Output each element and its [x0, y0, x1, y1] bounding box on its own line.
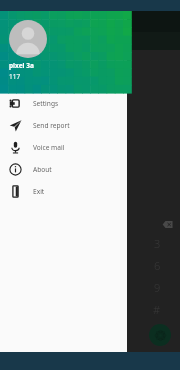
staticText: 6: [154, 258, 161, 273]
button[interactable]: Send report: [0, 114, 127, 136]
button[interactable]: Call: [149, 324, 171, 346]
staticText: 3: [154, 236, 161, 251]
staticText: Send report: [33, 121, 70, 130]
staticText: About: [33, 165, 52, 174]
button[interactable]: Exit: [0, 180, 127, 202]
button[interactable]: pixel 3a: [0, 11, 127, 89]
button[interactable]: Messages: [107, 33, 123, 49]
staticText: Settings: [33, 99, 59, 108]
staticText: 117: [9, 72, 21, 81]
button[interactable]: Settings: [0, 92, 127, 114]
button[interactable]: Backspace: [160, 217, 174, 231]
staticText: 9: [154, 280, 161, 295]
button[interactable]: Voice mail: [0, 136, 127, 158]
staticText: Exit: [33, 187, 45, 196]
staticText: Voice mail: [33, 143, 65, 152]
button[interactable]: About: [0, 158, 127, 180]
staticText: pixel 3a: [9, 61, 34, 70]
staticText: #: [153, 302, 161, 317]
